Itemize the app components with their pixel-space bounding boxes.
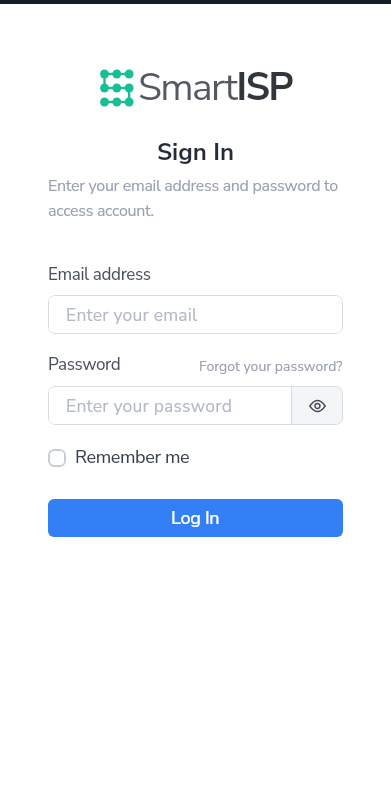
staticText: Remember me: [75, 445, 190, 470]
button[interactable]: Log In: [48, 499, 343, 537]
staticText: Password: [48, 353, 121, 376]
button[interactable]: Remember me: [48, 445, 190, 470]
button[interactable]: Enter your email: [48, 295, 343, 334]
staticText: Enter your email: [66, 303, 198, 327]
button[interactable]: [291, 386, 343, 425]
staticText: Enter your password: [66, 394, 233, 418]
staticText: Sign In: [0, 136, 391, 169]
staticText: Log In: [171, 506, 220, 531]
staticText: Enter your email address and password to…: [48, 175, 338, 222]
button[interactable]: Forgot your password?: [199, 357, 343, 376]
staticText: SmartISP: [138, 61, 293, 114]
button[interactable]: Enter your password: [48, 386, 291, 425]
staticText: Email address: [48, 263, 151, 286]
